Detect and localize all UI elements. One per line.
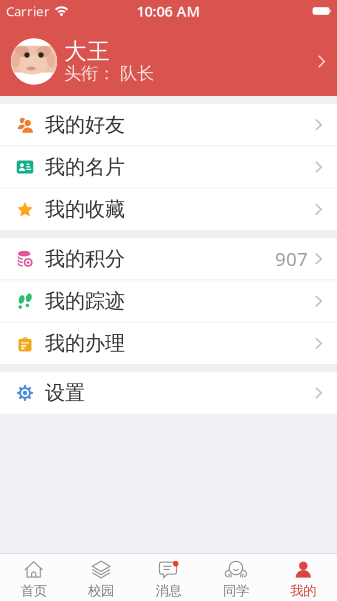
staticText: 头衔： 队长 [64, 63, 154, 84]
button[interactable]: 我的办理 [0, 323, 337, 364]
staticText: 大王 [64, 38, 110, 65]
staticText: 消息 [155, 583, 181, 599]
button[interactable]: 校园 [67, 554, 135, 600]
button[interactable]: 我的收藏 [0, 189, 337, 230]
staticText: 设置 [45, 381, 85, 405]
button[interactable]: 同学 [202, 554, 270, 600]
button[interactable]: 首页 [0, 554, 67, 600]
button[interactable]: 大王 [0, 22, 337, 96]
staticText: 我的名片 [45, 155, 125, 179]
button[interactable]: 我的名片 [0, 146, 337, 188]
staticText: 我的 [290, 583, 316, 599]
staticText: 我的办理 [45, 331, 125, 356]
staticText: 我的好友 [45, 112, 125, 137]
staticText: 校园 [88, 583, 114, 599]
staticText: Carrier [6, 2, 50, 20]
button[interactable]: 我的踪迹 [0, 280, 337, 322]
button[interactable]: 我的 [270, 554, 337, 600]
staticText: 首页 [21, 583, 47, 599]
staticText: 10:06 AM [136, 1, 200, 21]
button[interactable]: 设置 [0, 372, 337, 414]
button[interactable]: 我的好友 [0, 104, 337, 145]
staticText: 我的积分 [45, 247, 125, 271]
staticText: 我的踪迹 [45, 289, 125, 313]
button[interactable]: 我的积分 [0, 238, 337, 280]
staticText: 我的收藏 [45, 197, 125, 222]
button[interactable]: 消息 [135, 554, 202, 600]
staticText: 907 [275, 246, 308, 271]
staticText: 同学 [223, 583, 249, 599]
